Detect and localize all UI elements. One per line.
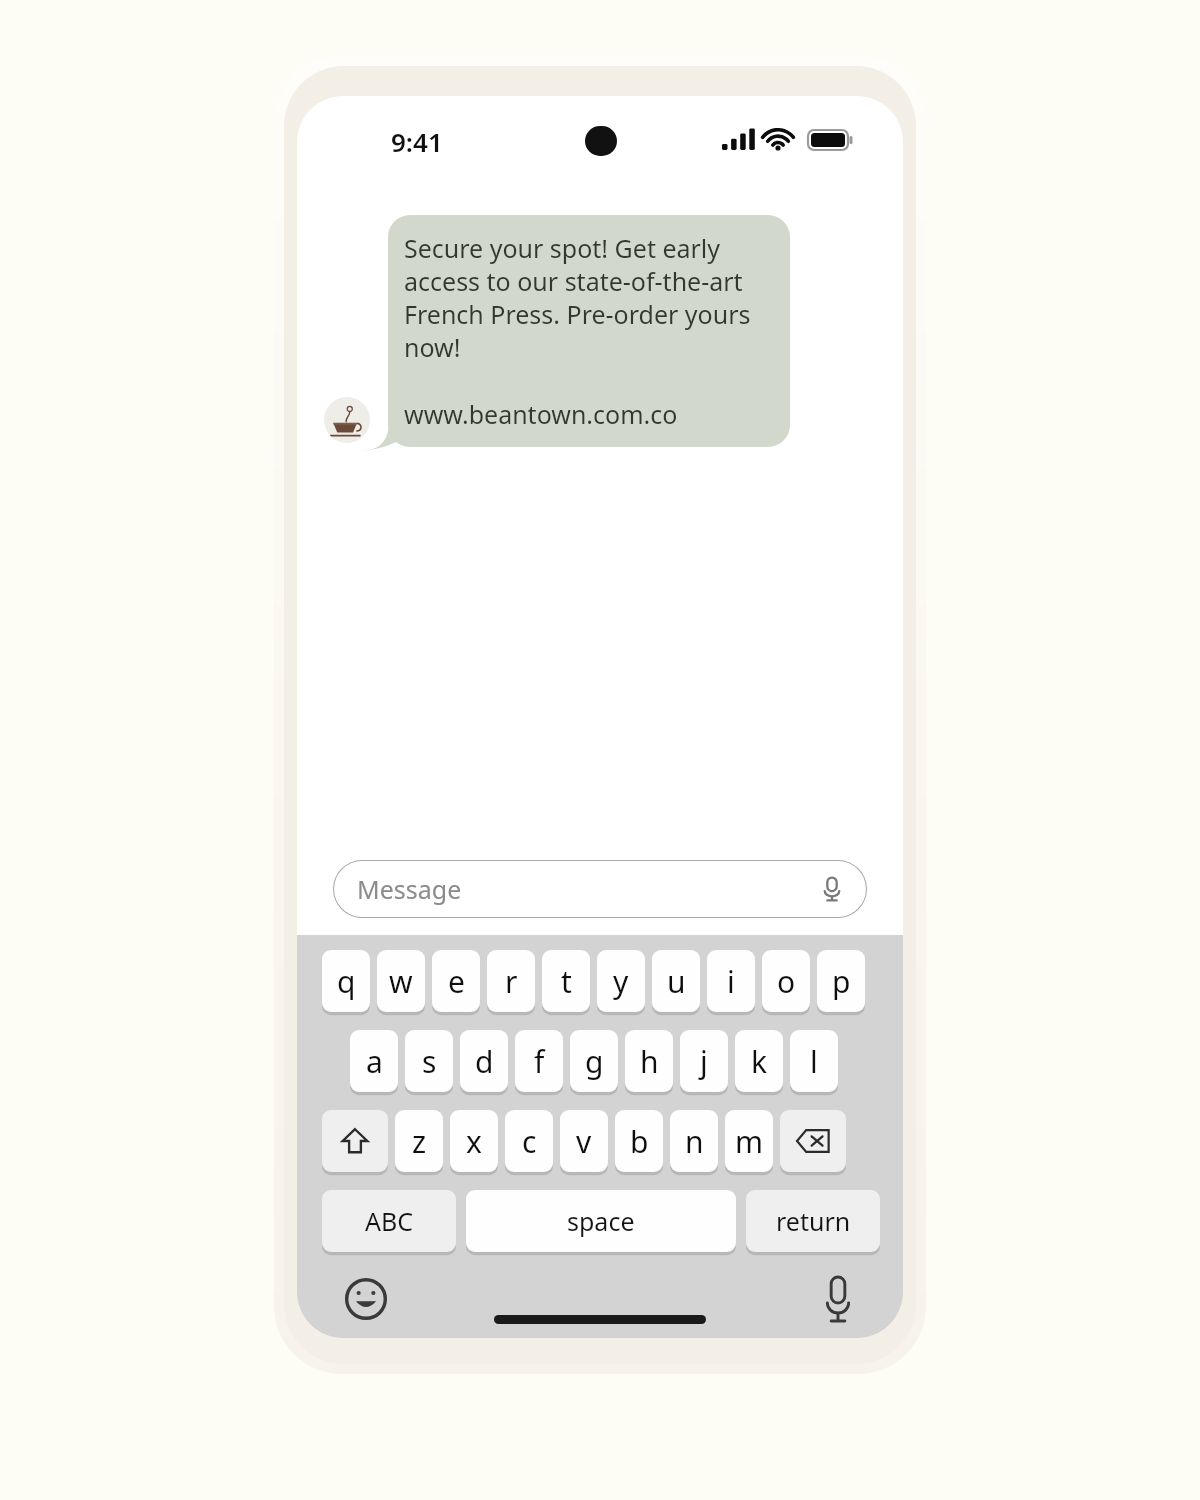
button[interactable]: Shift — [322, 1110, 388, 1172]
other: Voice input — [819, 876, 845, 902]
button[interactable]: Sender avatar — [324, 397, 370, 443]
staticText: k — [751, 1041, 768, 1082]
button[interactable]: c — [505, 1110, 553, 1172]
button[interactable]: p — [817, 950, 865, 1012]
staticText: g — [585, 1041, 604, 1082]
button[interactable]: s — [405, 1030, 453, 1092]
button[interactable]: z — [395, 1110, 443, 1172]
staticText: y — [613, 961, 629, 1002]
staticText: ABC — [365, 1204, 414, 1238]
button[interactable]: Dictate — [819, 1274, 857, 1324]
button[interactable]: Secure your spot! Get early access to ou… — [388, 215, 790, 447]
button[interactable]: Emoji — [343, 1276, 389, 1322]
staticText: s — [422, 1041, 437, 1082]
button[interactable]: y — [597, 950, 645, 1012]
staticText: h — [640, 1041, 659, 1082]
staticText: u — [667, 961, 686, 1002]
button[interactable]: n — [670, 1110, 718, 1172]
button[interactable]: a — [350, 1030, 398, 1092]
button[interactable]: e — [432, 950, 480, 1012]
staticText: l — [810, 1041, 818, 1082]
button[interactable]: b — [615, 1110, 663, 1172]
button[interactable]: t — [542, 950, 590, 1012]
button[interactable]: f — [515, 1030, 563, 1092]
button[interactable]: x — [450, 1110, 498, 1172]
staticText: z — [412, 1121, 427, 1162]
staticText: c — [522, 1121, 537, 1162]
button[interactable]: d — [460, 1030, 508, 1092]
staticText: Secure your spot! Get early access to ou… — [404, 231, 774, 364]
button[interactable]: k — [735, 1030, 783, 1092]
staticText: q — [337, 961, 356, 1002]
button[interactable]: space — [466, 1190, 736, 1252]
staticText: f — [534, 1041, 545, 1082]
staticText: j — [700, 1041, 708, 1082]
button[interactable]: h — [625, 1030, 673, 1092]
staticText: w — [389, 961, 413, 1002]
staticText: 9:41 — [391, 124, 443, 159]
staticText: p — [832, 961, 851, 1002]
button[interactable]: q — [322, 950, 370, 1012]
staticText: return — [776, 1204, 851, 1238]
button[interactable]: i — [707, 950, 755, 1012]
button[interactable]: w — [377, 950, 425, 1012]
staticText: t — [561, 961, 572, 1002]
staticText: m — [735, 1121, 764, 1162]
button[interactable]: r — [487, 950, 535, 1012]
button[interactable]: u — [652, 950, 700, 1012]
button[interactable]: v — [560, 1110, 608, 1172]
staticText: r — [505, 961, 518, 1002]
button[interactable]: Backspace — [780, 1110, 846, 1172]
button[interactable]: j — [680, 1030, 728, 1092]
staticText: www.beantown.com.co — [404, 397, 678, 431]
staticText: n — [685, 1121, 704, 1162]
staticText: d — [475, 1041, 494, 1082]
staticText: v — [576, 1121, 592, 1162]
button[interactable]: return — [746, 1190, 880, 1252]
button[interactable]: ABC — [322, 1190, 456, 1252]
staticText: e — [448, 961, 465, 1002]
staticText: b — [630, 1121, 649, 1162]
button[interactable]: g — [570, 1030, 618, 1092]
staticText: a — [366, 1041, 383, 1082]
staticText: x — [466, 1121, 482, 1162]
staticText: space — [567, 1204, 635, 1238]
button[interactable]: Message — [333, 860, 867, 918]
staticText: i — [727, 961, 735, 1002]
button[interactable]: o — [762, 950, 810, 1012]
button[interactable]: m — [725, 1110, 773, 1172]
button[interactable]: l — [790, 1030, 838, 1092]
staticText: Message — [357, 872, 462, 906]
staticText: o — [777, 961, 796, 1002]
